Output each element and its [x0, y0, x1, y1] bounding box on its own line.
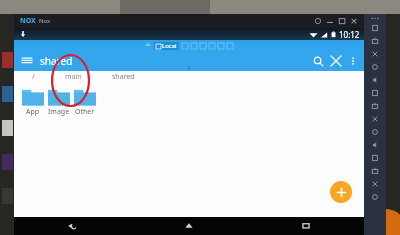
- button[interactable]: Add: [330, 181, 352, 203]
- staticText: Nox: [39, 17, 51, 25]
- button[interactable]: Recents: [247, 217, 364, 235]
- button[interactable]: Settings: [312, 15, 324, 27]
- button[interactable]: Install APK: [364, 34, 386, 47]
- button[interactable]: Tab 3: [200, 43, 206, 49]
- button[interactable]: Tab 5: [218, 43, 224, 49]
- button[interactable]: Back: [364, 164, 386, 177]
- button[interactable]: Close: [327, 52, 345, 70]
- button[interactable]: Home: [364, 177, 386, 190]
- button[interactable]: Image: [46, 87, 72, 117]
- button[interactable]: main: [63, 72, 84, 82]
- staticText: App: [26, 107, 40, 117]
- button[interactable]: Search: [309, 52, 327, 70]
- staticText: NOX: [20, 16, 36, 26]
- button[interactable]: Tab 1: [182, 43, 188, 49]
- button[interactable]: Tab 4: [209, 43, 215, 49]
- staticText: /: [32, 72, 35, 82]
- button[interactable]: Volume down: [364, 112, 386, 125]
- button[interactable]: Tab 6: [227, 43, 233, 49]
- button[interactable]: Tab 2: [191, 43, 197, 49]
- button[interactable]: Volume mute: [364, 125, 386, 138]
- staticText: shared: [112, 72, 135, 82]
- button[interactable]: App: [20, 87, 46, 117]
- button[interactable]: Fullscreen: [364, 86, 386, 99]
- button[interactable]: /: [30, 72, 37, 82]
- button[interactable]: More options: [345, 53, 361, 69]
- button[interactable]: Recents: [364, 190, 386, 203]
- button[interactable]: Other: [72, 87, 98, 117]
- button[interactable]: Back: [14, 217, 130, 235]
- button[interactable]: Home: [130, 217, 247, 235]
- button[interactable]: Maximize: [336, 15, 348, 27]
- staticText: Image: [48, 107, 70, 117]
- button[interactable]: Menu: [18, 52, 36, 70]
- button[interactable]: Shake: [364, 47, 386, 60]
- staticText: 10:12: [339, 29, 360, 40]
- staticText: Other: [75, 107, 95, 117]
- staticText: shared: [40, 54, 73, 68]
- button[interactable]: Close: [348, 15, 360, 27]
- button[interactable]: Local: [156, 42, 177, 50]
- button[interactable]: Minimize: [324, 15, 336, 27]
- button[interactable]: shared: [110, 72, 137, 82]
- button[interactable]: Settings: [364, 60, 386, 73]
- button[interactable]: Volume up: [364, 99, 386, 112]
- staticText: main: [65, 72, 82, 82]
- button[interactable]: Shared folder: [364, 151, 386, 164]
- button[interactable]: Screenshot: [364, 21, 386, 34]
- button[interactable]: Macro: [364, 73, 386, 86]
- staticText: Local: [162, 42, 177, 50]
- button[interactable]: Record: [364, 138, 386, 151]
